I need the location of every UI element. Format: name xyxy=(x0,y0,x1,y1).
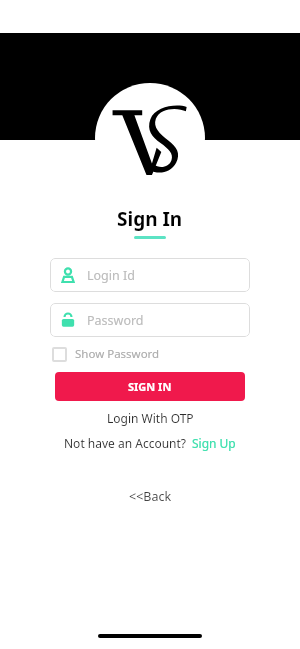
staticText: Password xyxy=(87,312,144,329)
button[interactable]: Login Id xyxy=(50,258,250,292)
staticText: Not have an Account? xyxy=(64,435,187,451)
staticText: SIGN IN xyxy=(128,379,172,394)
button[interactable]: <<Back xyxy=(129,488,172,505)
staticText: Sign In xyxy=(117,206,183,232)
staticText: <<Back xyxy=(129,488,172,505)
staticText: Sign Up xyxy=(192,435,236,451)
button[interactable]: Show Password xyxy=(52,346,248,362)
button[interactable]: Login With OTP xyxy=(107,410,194,426)
staticText: Login With OTP xyxy=(107,410,194,426)
staticText: Show Password xyxy=(75,346,160,362)
button[interactable]: SIGN IN xyxy=(55,372,245,401)
button[interactable]: Sign Up xyxy=(192,435,236,451)
button[interactable]: Password xyxy=(50,303,250,337)
staticText: Login Id xyxy=(87,267,135,284)
